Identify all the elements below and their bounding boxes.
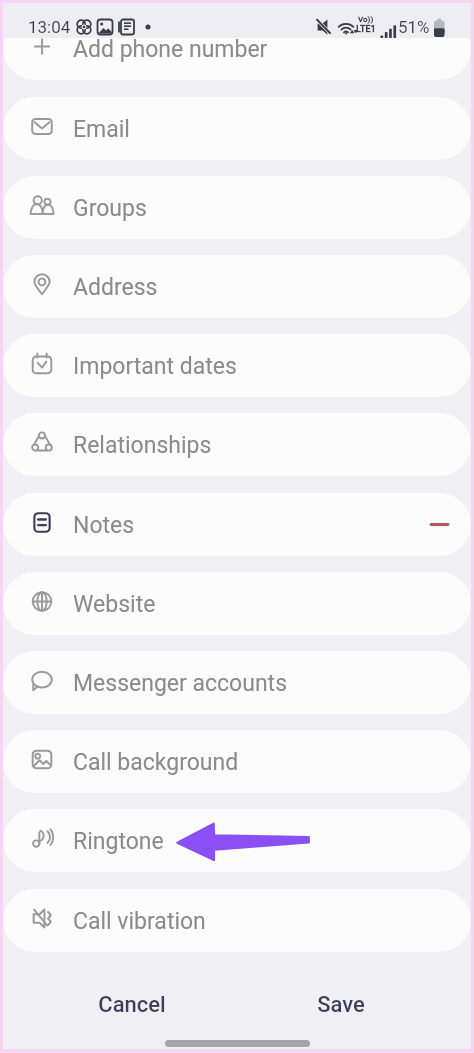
staticText: 13:04 — [28, 17, 71, 37]
button[interactable]: Important dates — [3, 334, 471, 397]
staticText: Groups — [73, 195, 147, 222]
staticText: Notes — [73, 512, 135, 539]
button[interactable]: Messenger accounts — [3, 651, 471, 714]
button[interactable]: Call vibration — [3, 889, 471, 952]
staticText: Cancel — [98, 992, 166, 1018]
staticText: 51% — [398, 17, 430, 37]
button[interactable]: Address — [3, 255, 471, 318]
staticText: Email — [73, 116, 130, 143]
button[interactable]: Relationships — [3, 413, 471, 476]
staticText: Website — [73, 591, 156, 618]
staticText: Address — [73, 274, 158, 301]
staticText: Vo)) — [358, 15, 374, 24]
button[interactable]: Website — [3, 572, 471, 635]
button[interactable]: Call background — [3, 730, 471, 793]
other: Home — [165, 1040, 310, 1047]
button[interactable]: Cancel — [59, 981, 205, 1029]
button[interactable]: Email — [3, 97, 471, 160]
staticText: LTE1 — [356, 24, 376, 35]
staticText: Relationships — [73, 432, 212, 459]
button[interactable]: Groups — [3, 176, 471, 239]
button[interactable]: Ringtone — [3, 809, 471, 872]
button[interactable]: Add phone number — [3, 17, 471, 80]
button[interactable]: Save — [268, 981, 414, 1029]
staticText: Messenger accounts — [73, 670, 288, 697]
staticText: Ringtone — [73, 828, 164, 855]
staticText: Call vibration — [73, 908, 206, 935]
staticText: Add phone number — [73, 36, 268, 63]
button[interactable]: Notes — [3, 493, 471, 556]
staticText: Call background — [73, 749, 239, 776]
staticText: Save — [317, 992, 365, 1018]
staticText: Important dates — [73, 353, 237, 380]
